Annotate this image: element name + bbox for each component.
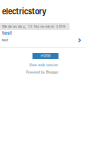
button[interactable]: Home <box>32 53 58 59</box>
staticText: Home <box>40 54 50 58</box>
staticText: We dn es da y, 1 3 No ve mb er 2 01 9 <box>2 24 65 29</box>
button[interactable]: View web version <box>29 63 58 67</box>
staticText: Powered by Blogger. <box>26 70 59 74</box>
staticText: electricstory <box>2 7 46 16</box>
staticText: test <box>2 38 8 42</box>
staticText: View web version <box>29 63 58 67</box>
button[interactable]: test <box>0 30 85 47</box>
staticText: test <box>2 30 12 36</box>
